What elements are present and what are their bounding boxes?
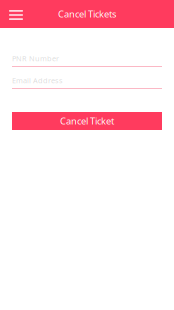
button[interactable]: Cancel Ticket (12, 112, 162, 130)
staticText: Email Address (12, 75, 63, 85)
button[interactable]: Menu (4, 1, 28, 27)
button[interactable]: Email Address (12, 76, 162, 89)
staticText: Cancel Tickets (58, 8, 116, 20)
staticText: Cancel Ticket (60, 115, 114, 127)
button[interactable]: PNR Number (12, 54, 162, 67)
staticText: PNR Number (12, 53, 59, 63)
